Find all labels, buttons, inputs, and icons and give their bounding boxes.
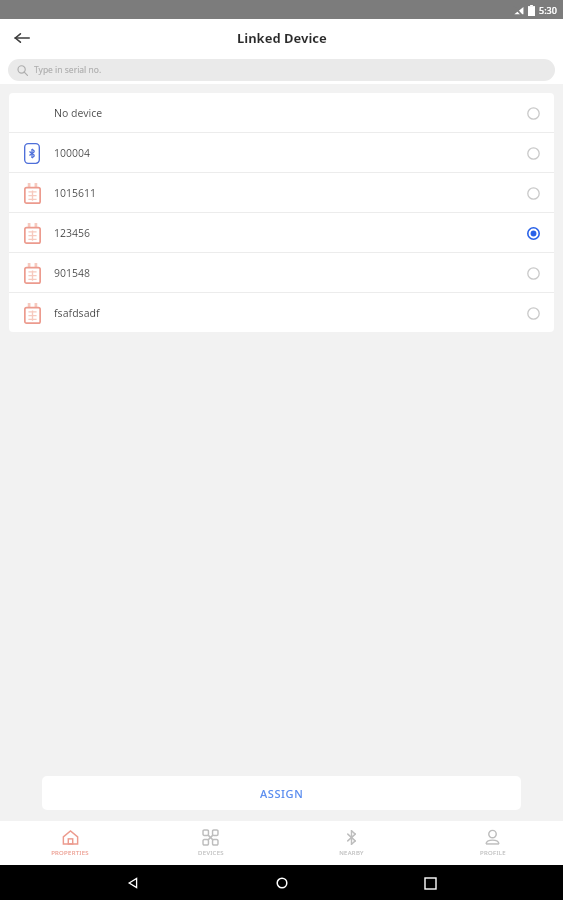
button[interactable]: ASSIGN bbox=[42, 776, 521, 810]
staticText: PROPERTIES bbox=[51, 849, 89, 857]
staticText: NEARBY bbox=[339, 849, 364, 857]
staticText: ASSIGN bbox=[260, 786, 304, 801]
staticText: 901548 bbox=[54, 266, 91, 280]
staticText: 5:30 bbox=[539, 4, 557, 16]
button[interactable]: fsafdsadf bbox=[9, 293, 554, 332]
staticText: Linked Device bbox=[237, 29, 327, 47]
button[interactable]: Recents bbox=[415, 868, 445, 898]
button[interactable]: Select bbox=[522, 262, 544, 284]
button[interactable]: PROFILE bbox=[422, 825, 563, 861]
staticText: No device bbox=[54, 106, 103, 120]
button[interactable]: Select bbox=[522, 142, 544, 164]
button[interactable]: Select bbox=[522, 182, 544, 204]
button[interactable]: NEARBY bbox=[281, 825, 422, 861]
button[interactable]: Selected bbox=[522, 222, 544, 244]
button[interactable]: 123456 bbox=[9, 213, 554, 252]
button[interactable]: Back bbox=[7, 23, 37, 53]
button[interactable]: Back bbox=[118, 868, 148, 898]
button[interactable]: 1015611 bbox=[9, 173, 554, 212]
staticText: 123456 bbox=[54, 226, 91, 240]
staticText: 100004 bbox=[54, 146, 91, 160]
staticText: Type in serial no. bbox=[34, 64, 102, 76]
button[interactable]: No device bbox=[9, 93, 554, 132]
button[interactable]: Home bbox=[267, 868, 297, 898]
staticText: fsafdsadf bbox=[54, 306, 100, 320]
staticText: DEVICES bbox=[198, 849, 224, 857]
staticText: PROFILE bbox=[480, 849, 506, 857]
button[interactable]: Type in serial no. bbox=[8, 59, 555, 81]
button[interactable]: Select bbox=[522, 102, 544, 124]
button[interactable]: Select bbox=[522, 302, 544, 324]
button[interactable]: DEVICES bbox=[140, 825, 281, 861]
staticText: 1015611 bbox=[54, 186, 97, 200]
button[interactable]: PROPERTIES bbox=[0, 825, 140, 861]
button[interactable]: 901548 bbox=[9, 253, 554, 292]
button[interactable]: 100004 bbox=[9, 133, 554, 172]
